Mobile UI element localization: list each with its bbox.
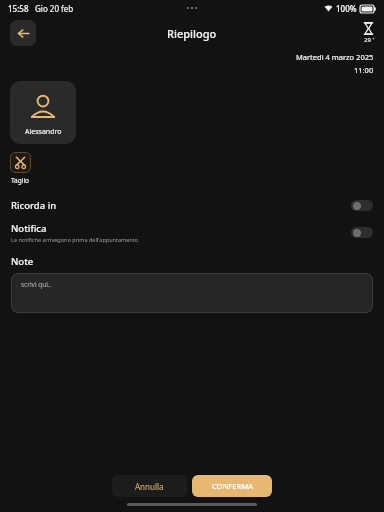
staticText: Taglio bbox=[11, 176, 30, 185]
button[interactable]: Annulla bbox=[112, 475, 187, 497]
button[interactable]: Taglio bbox=[10, 152, 31, 185]
button[interactable]: scrivi qui.. bbox=[11, 273, 373, 313]
staticText: Gio 20 feb bbox=[35, 3, 74, 14]
button[interactable]: Notifica bbox=[0, 220, 384, 245]
staticText: 29 ' bbox=[364, 36, 374, 44]
button[interactable]: Durata bbox=[362, 22, 375, 44]
staticText: 15:58 bbox=[8, 3, 29, 14]
staticText: 100% bbox=[336, 3, 357, 14]
staticText: Notifica bbox=[11, 222, 47, 235]
staticText: scrivi qui.. bbox=[21, 280, 52, 289]
staticText: Le notifiche arrivegono prima dell'appun… bbox=[11, 236, 138, 243]
staticText: Alessandro bbox=[25, 127, 62, 137]
button[interactable]: Ricorda in bbox=[0, 197, 384, 214]
button[interactable]: Alessandro bbox=[10, 81, 76, 144]
button[interactable]: Indietro bbox=[10, 20, 36, 46]
staticText: CONFERMA bbox=[212, 481, 253, 491]
staticText: Ricorda in bbox=[11, 199, 57, 212]
staticText: Riepilogo bbox=[167, 26, 217, 41]
staticText: Martedì 4 marzo 2025 bbox=[296, 52, 374, 62]
staticText: Annulla bbox=[135, 481, 164, 492]
button[interactable]: CONFERMA bbox=[192, 475, 272, 497]
staticText: 11:00 bbox=[354, 65, 374, 75]
staticText: Note bbox=[11, 255, 34, 268]
